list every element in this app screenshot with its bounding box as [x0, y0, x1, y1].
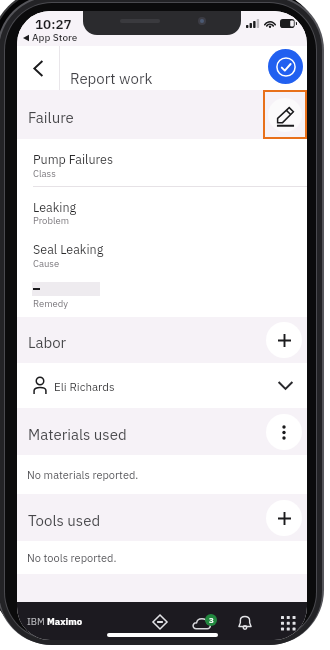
staticText: Report work [70, 69, 153, 89]
button[interactable]: Pump Failures [17, 139, 307, 187]
staticText: Problem [33, 214, 70, 226]
staticText: Labor [28, 333, 67, 353]
button[interactable]: Eli Richards [17, 363, 307, 407]
button[interactable]: Remedy [17, 274, 307, 317]
button[interactable]: Add Tools used [266, 500, 302, 536]
button[interactable]: Add Labor [266, 322, 302, 358]
button[interactable]: Leaking [17, 187, 307, 231]
button[interactable]: Notifications [234, 611, 256, 633]
button[interactable]: Seal Leaking [17, 231, 307, 274]
staticText: 10:27 [35, 15, 72, 33]
staticText: IBM [27, 615, 47, 627]
staticText: Eli Richards [54, 379, 115, 394]
button[interactable]: More options [266, 414, 302, 450]
button[interactable]: Work orders [149, 611, 171, 633]
staticText: Failure [28, 108, 74, 128]
staticText: No materials reported. [27, 468, 139, 482]
staticText: Cause [33, 257, 60, 269]
button[interactable]: Sync, 3 pending [188, 606, 214, 632]
staticText: Maximo [47, 615, 83, 627]
staticText: Leaking [33, 199, 77, 215]
staticText: No tools reported. [27, 551, 117, 565]
button[interactable]: Complete work [268, 49, 303, 84]
staticText: Seal Leaking [33, 241, 104, 257]
staticText: Pump Failures [33, 151, 114, 167]
staticText: Tools used [28, 511, 101, 531]
staticText: Materials used [28, 425, 127, 445]
button[interactable]: All apps [278, 613, 296, 631]
button[interactable]: Edit failure [263, 90, 307, 139]
staticText: App Store [32, 31, 78, 44]
button[interactable]: Back [17, 46, 59, 90]
staticText: Class [33, 167, 56, 179]
staticText: 3 [209, 615, 214, 625]
staticText: Remedy [33, 297, 68, 309]
